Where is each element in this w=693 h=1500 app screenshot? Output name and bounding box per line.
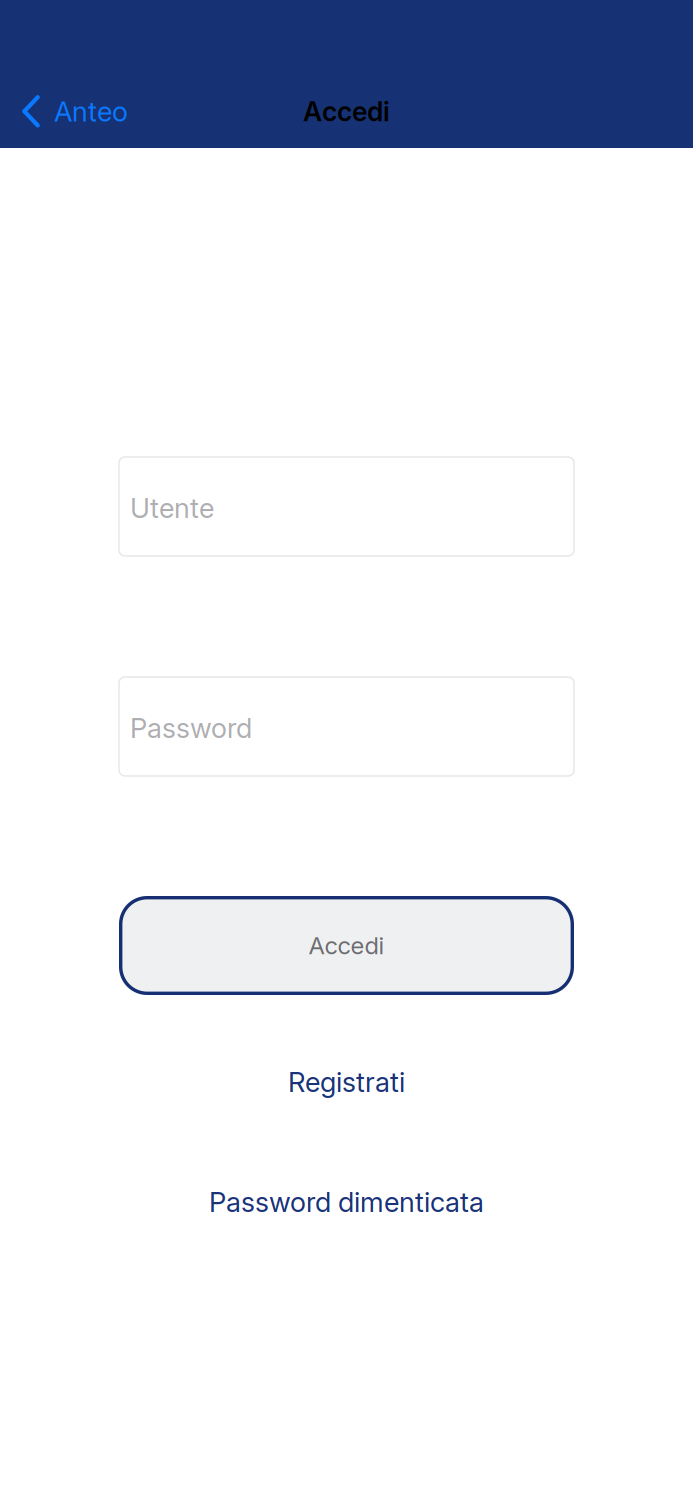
button[interactable]: Back to Anteo: [0, 88, 142, 135]
button[interactable]: Registrati: [119, 1060, 574, 1104]
staticText: Accedi: [308, 931, 384, 960]
staticText: Registrati: [288, 1065, 405, 1099]
navigationBar: Accedi: [0, 0, 693, 148]
textField[interactable]: Utente: [119, 457, 574, 556]
staticText: Accedi: [303, 95, 390, 128]
staticText: Password: [130, 711, 252, 745]
secureTextField[interactable]: Password: [119, 677, 574, 776]
staticText: Utente: [130, 491, 214, 525]
staticText: Anteo: [54, 95, 128, 128]
button[interactable]: Password dimenticata: [119, 1180, 574, 1224]
staticText: Password dimenticata: [209, 1185, 484, 1219]
button[interactable]: Accedi: [119, 896, 574, 995]
